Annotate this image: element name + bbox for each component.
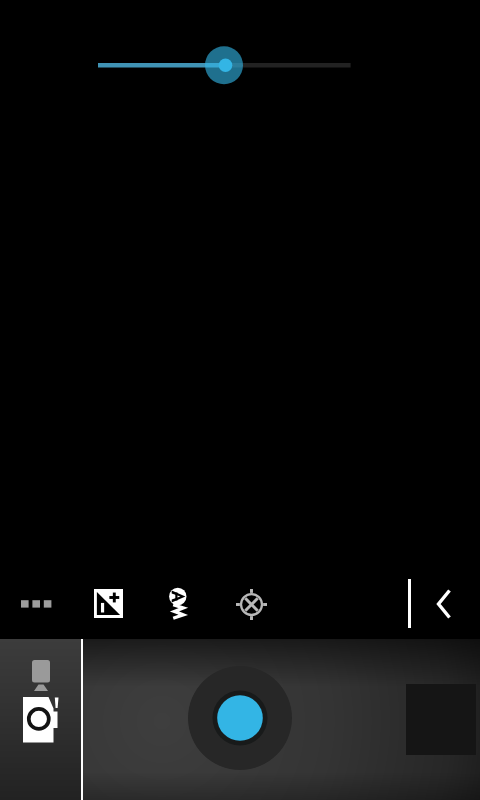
button[interactable]: White balance <box>158 577 202 631</box>
button[interactable]: Shutter <box>188 666 292 770</box>
button[interactable]: Switch between photo and video <box>0 639 81 800</box>
button[interactable]: More options <box>10 578 62 630</box>
button[interactable]: Zoom slider <box>80 40 370 90</box>
button[interactable]: Location off <box>228 581 275 628</box>
button[interactable]: Exposure compensation <box>86 581 131 626</box>
button[interactable]: Collapse controls <box>429 581 459 627</box>
